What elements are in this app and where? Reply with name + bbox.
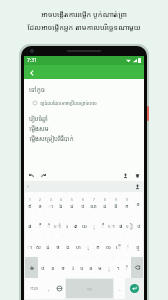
button[interactable]: Shift xyxy=(25,257,38,278)
button[interactable]: 6 xyxy=(77,192,88,214)
staticText: ឺ xyxy=(38,222,42,229)
button[interactable]: ោ xyxy=(107,214,116,236)
staticText: ោ xyxy=(108,222,115,229)
button[interactable]: ឹ xyxy=(98,214,107,236)
button[interactable]: Change language xyxy=(54,278,65,299)
staticText: ៏ xyxy=(125,264,129,271)
button[interactable]: ឲ xyxy=(132,192,143,214)
staticText: ផ xyxy=(119,222,123,229)
staticText: រៀបចំឆ្នាំ xyxy=(29,114,48,122)
staticText: › xyxy=(27,182,29,190)
staticText: ា xyxy=(27,243,32,250)
staticText: 7:31 xyxy=(27,57,37,64)
staticText: 3 xyxy=(50,198,52,202)
button[interactable]: រៀបចំឆ្នាំ xyxy=(29,114,144,122)
button[interactable]: វ xyxy=(68,257,77,278)
staticText: ឋ xyxy=(41,264,45,271)
button[interactable]: Backspace xyxy=(131,257,143,278)
staticText: ត xyxy=(74,222,78,229)
button[interactable]: ផ xyxy=(25,214,35,236)
button[interactable]: Voice input xyxy=(121,171,129,179)
button[interactable]: ក xyxy=(93,236,103,257)
staticText: ខ្មែរ xyxy=(87,286,92,291)
staticText: ា xyxy=(48,202,53,209)
button[interactable]: ម xyxy=(95,257,104,278)
button[interactable]: ផ xyxy=(116,214,125,236)
button[interactable]: ស xyxy=(34,236,43,257)
button[interactable]: ត xyxy=(71,214,80,236)
button[interactable]: 1 xyxy=(25,192,35,214)
button[interactable]: ិ xyxy=(44,214,53,236)
button[interactable]: 3 xyxy=(45,192,55,214)
staticText: ក xyxy=(96,243,100,250)
button[interactable]: 5 xyxy=(66,192,77,214)
staticText: . xyxy=(119,285,121,292)
button[interactable]: Undo xyxy=(27,171,35,179)
button[interactable]: ឮ xyxy=(133,236,143,257)
button[interactable]: ់ xyxy=(123,236,133,257)
button[interactable]: ៏ xyxy=(122,257,131,278)
button[interactable]: 0 xyxy=(121,192,132,214)
staticText: ឥ xyxy=(28,202,32,209)
button[interactable]: ៀ xyxy=(125,214,134,236)
button[interactable]: ថ xyxy=(53,236,63,257)
button[interactable]: ុ xyxy=(89,214,98,236)
button[interactable]: ដ xyxy=(43,236,53,257)
button[interactable]: ង xyxy=(63,236,73,257)
button[interactable]: ន xyxy=(86,257,95,278)
staticText: ម្លើងសម្រៀបវិធីបាក់ xyxy=(29,134,74,142)
button[interactable]: ឺ xyxy=(35,214,44,236)
button[interactable]: យ xyxy=(80,214,89,236)
staticText: 6 xyxy=(82,198,84,202)
button[interactable]: ឋ xyxy=(38,257,48,278)
button[interactable]: ?123 xyxy=(25,278,43,299)
button[interactable]: ទៅកូច xyxy=(29,85,144,94)
button[interactable]: ល xyxy=(103,236,113,257)
staticText: ស្តង់ដារដែលអាចប្រើបានគ្រប់ពេល xyxy=(40,100,97,106)
button[interactable]: 8 xyxy=(99,192,110,214)
staticText: យ xyxy=(82,222,87,229)
button[interactable]: ប xyxy=(77,257,86,278)
button[interactable]: , xyxy=(43,278,54,299)
staticText: ឮ xyxy=(136,243,140,250)
button[interactable]: 7 xyxy=(88,192,99,214)
button[interactable]: Delete xyxy=(133,171,141,179)
staticText: 0 xyxy=(126,198,128,202)
button[interactable]: Enter xyxy=(130,284,139,293)
staticText: 8 xyxy=(104,198,106,202)
button[interactable]: 9 xyxy=(110,192,121,214)
button[interactable]: ម្លើងសម xyxy=(29,124,144,132)
staticText: 4 xyxy=(60,198,62,202)
button[interactable]: Redo xyxy=(39,171,47,179)
staticText: ឲ xyxy=(38,202,42,209)
staticText: ឲ xyxy=(136,200,140,207)
button[interactable]: ម្លើងសម្រៀបវិធីបាក់ xyxy=(29,134,144,142)
button[interactable]: ើ xyxy=(113,236,123,257)
button[interactable]: ស្តង់ដារដែលអាចប្រើបានគ្រប់ពេល xyxy=(33,100,144,106)
button[interactable]: ច xyxy=(58,257,68,278)
button[interactable]: Back xyxy=(26,67,37,78)
button[interactable]: រ xyxy=(62,214,71,236)
staticText: រ xyxy=(66,222,68,229)
button[interactable]: ៅ xyxy=(53,214,62,236)
button[interactable]: 4 xyxy=(55,192,66,214)
button[interactable]: ហ xyxy=(73,236,83,257)
staticText: ល xyxy=(106,243,111,250)
staticText: 2 xyxy=(39,198,41,202)
button[interactable]: ឋ xyxy=(134,214,143,236)
button[interactable]: ុ xyxy=(104,257,113,278)
button[interactable]: Voice xyxy=(133,182,141,190)
button[interactable]: 2 xyxy=(35,192,45,214)
button[interactable]: ។ xyxy=(113,257,122,278)
staticText: 1 xyxy=(29,198,31,202)
button[interactable]: ា xyxy=(25,236,34,257)
staticText: ិ xyxy=(47,222,51,229)
staticText: ថ xyxy=(56,243,60,250)
button[interactable]: ខ xyxy=(48,257,58,278)
staticText: ផ xyxy=(28,222,32,229)
staticText: 7 xyxy=(93,198,95,202)
button[interactable]: ្ xyxy=(83,236,93,257)
staticText: ឪ xyxy=(114,202,118,209)
